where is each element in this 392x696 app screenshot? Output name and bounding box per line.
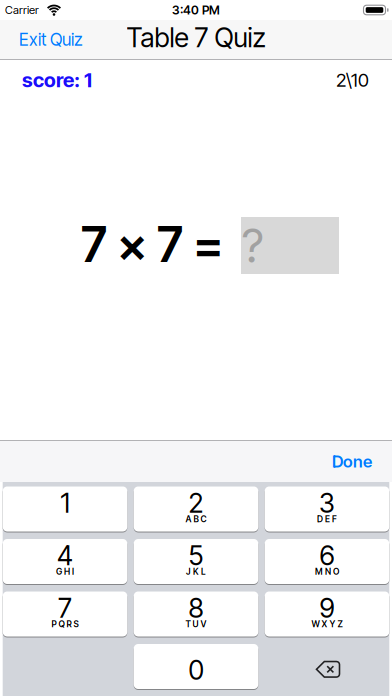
staticText: Carrier bbox=[5, 3, 39, 17]
staticText: 5 bbox=[188, 539, 203, 572]
staticText: 2\10 bbox=[336, 69, 369, 91]
button[interactable]: 6 bbox=[265, 538, 389, 584]
staticText: D E F bbox=[317, 514, 337, 524]
button[interactable]: 1 bbox=[3, 486, 127, 532]
button[interactable]: Delete bbox=[265, 643, 389, 689]
staticText: G H I bbox=[56, 566, 74, 577]
button[interactable]: Exit Quiz bbox=[0, 29, 83, 50]
staticText: J K L bbox=[186, 566, 206, 577]
staticText: 6 bbox=[319, 539, 334, 572]
staticText: 9 bbox=[319, 592, 334, 624]
staticText: 3 bbox=[319, 487, 335, 519]
staticText: W X Y Z bbox=[311, 619, 342, 629]
button[interactable]: Done bbox=[332, 451, 392, 472]
button[interactable]: 7 bbox=[3, 591, 127, 637]
button[interactable]: 3 bbox=[265, 486, 389, 532]
staticText: 3:40 PM bbox=[172, 3, 220, 17]
staticText: P Q R S bbox=[51, 619, 78, 629]
staticText: M N O bbox=[315, 566, 339, 577]
staticText: Done bbox=[332, 451, 372, 472]
staticText: A B C bbox=[185, 514, 206, 524]
button[interactable]: 9 bbox=[265, 591, 389, 637]
staticText: Exit Quiz bbox=[19, 29, 83, 50]
staticText: score: 1 bbox=[22, 68, 92, 92]
staticText: 8 bbox=[188, 592, 203, 624]
staticText: 7 x 7 = bbox=[81, 215, 223, 274]
button[interactable]: 2 bbox=[134, 486, 258, 532]
staticText: 1 bbox=[60, 487, 69, 519]
staticText: T U V bbox=[185, 619, 206, 629]
button[interactable]: 5 bbox=[134, 538, 258, 584]
button[interactable]: 8 bbox=[134, 591, 258, 637]
staticText: ? bbox=[242, 217, 263, 274]
staticText: 2 bbox=[188, 487, 203, 519]
staticText: 7 bbox=[58, 592, 72, 624]
button[interactable]: 0 bbox=[134, 643, 258, 689]
staticText: Table 7 Quiz bbox=[126, 21, 265, 54]
staticText: 4 bbox=[57, 539, 73, 572]
button[interactable]: 4 bbox=[3, 538, 127, 584]
staticText: 0 bbox=[188, 654, 203, 686]
